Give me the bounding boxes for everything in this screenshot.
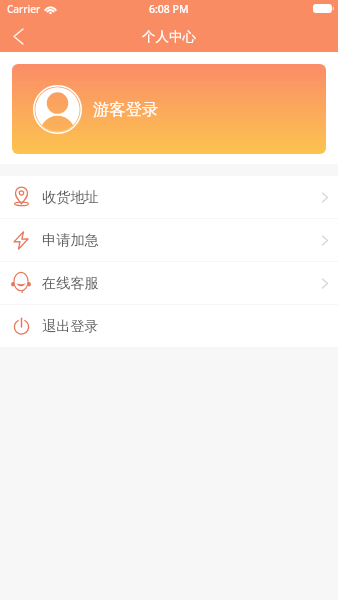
staticText: 游客登录 [93, 99, 159, 120]
staticText: 申请加急 [42, 231, 99, 249]
staticText: 6:08 PM [149, 2, 189, 16]
button[interactable]: 申请加急 [0, 219, 338, 261]
button[interactable]: 退出登录 [0, 305, 338, 347]
button[interactable]: Back [0, 21, 36, 52]
button[interactable]: 在线客服 [0, 262, 338, 304]
staticText: 退出登录 [42, 317, 99, 335]
button[interactable]: 收货地址 [0, 176, 338, 218]
staticText: 个人中心 [142, 28, 196, 45]
staticText: 在线客服 [42, 274, 99, 292]
staticText: Carrier [7, 2, 41, 16]
staticText: 收货地址 [42, 188, 99, 206]
button[interactable]: 游客登录 [12, 64, 326, 154]
